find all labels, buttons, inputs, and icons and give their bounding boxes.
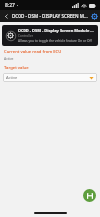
staticText: Active — [6, 75, 89, 80]
button[interactable]: DC0D - DSM - Display Screen Module - Kn/… — [2, 25, 98, 46]
button[interactable]: Active — [3, 73, 97, 82]
button[interactable]: Settings — [88, 10, 100, 22]
staticText: Active — [4, 56, 14, 61]
staticText: Controller — [18, 34, 34, 38]
staticText: Target value — [4, 65, 29, 71]
staticText: Current value read from ECU — [4, 49, 62, 55]
button[interactable]: Back — [0, 10, 12, 22]
button[interactable]: Save — [83, 189, 96, 202]
staticText: DC0D - DSM - DISPLAY SCREEN MO... — [12, 13, 88, 19]
staticText: Allows you to toggle the vehicle feature… — [18, 39, 92, 43]
staticText: DC0D - DSM - Display Screen Module - Kn/… — [18, 28, 95, 33]
staticText: 8:27 — [5, 2, 15, 9]
